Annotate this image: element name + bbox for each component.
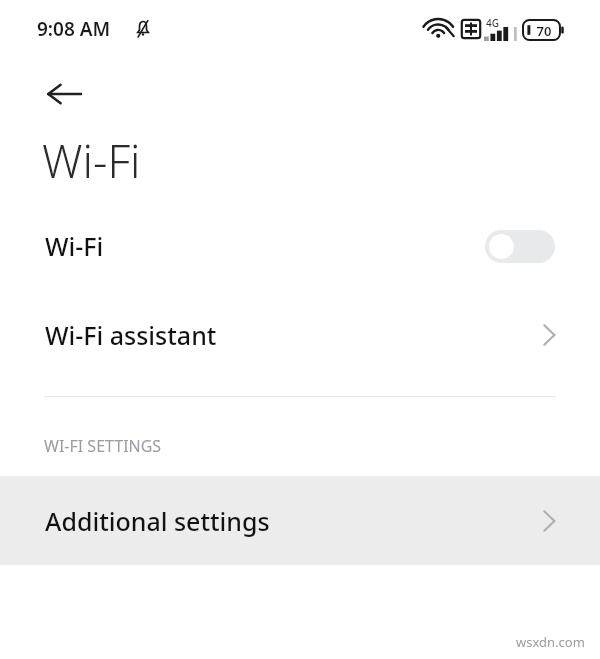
staticText: WI-FI SETTINGS (44, 435, 162, 457)
staticText: Additional settings (45, 504, 270, 538)
staticText: Wi-Fi assistant (45, 318, 217, 352)
staticText: 70 (530, 22, 558, 40)
button[interactable]: Back (34, 64, 94, 124)
button[interactable]: Wi-Fi (0, 202, 600, 290)
button[interactable]: Additional settings (0, 476, 600, 565)
button[interactable]: Wi-Fi assistant (0, 290, 600, 380)
staticText: 4G (486, 16, 499, 30)
other: Wi-Fi toggle (485, 230, 555, 263)
staticText: Wi-Fi (42, 130, 141, 191)
staticText: 9:08 AM (37, 16, 111, 42)
staticText: wsxdn.com (516, 633, 585, 651)
staticText: Wi-Fi (45, 229, 104, 263)
